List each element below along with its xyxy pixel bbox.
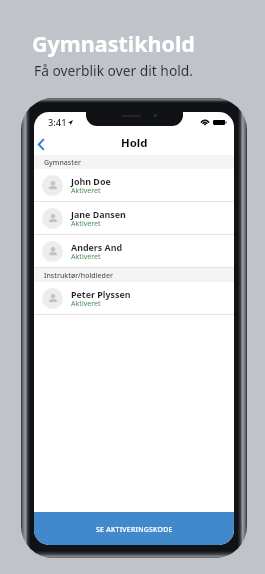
staticText: Instruktør/holdleder [44,271,113,281]
staticText: Hold [121,135,148,151]
button[interactable]: Anders And [34,235,234,268]
staticText: Gymnastikhold [32,29,195,58]
button[interactable]: Jane Dansen [34,202,234,235]
staticText: 3:41 [48,116,67,129]
button[interactable]: Peter Plyssen [34,282,234,315]
staticText: Aktiveret [71,298,101,308]
staticText: Få overblik over dit hold. [34,61,193,80]
staticText: SE AKTIVERINGSKODE [96,525,173,534]
staticText: Gymnaster [44,158,81,168]
staticText: Aktiveret [71,218,101,228]
staticText: John Doe [71,175,111,187]
staticText: Jane Dansen [71,208,126,220]
button[interactable]: John Doe [34,169,234,202]
button[interactable]: Back [34,135,50,153]
staticText: Aktiveret [71,185,101,195]
staticText: Aktiveret [71,251,101,261]
button[interactable]: SE AKTIVERINGSKODE [34,512,234,545]
staticText: Anders And [71,241,123,253]
staticText: Peter Plyssen [71,288,131,300]
